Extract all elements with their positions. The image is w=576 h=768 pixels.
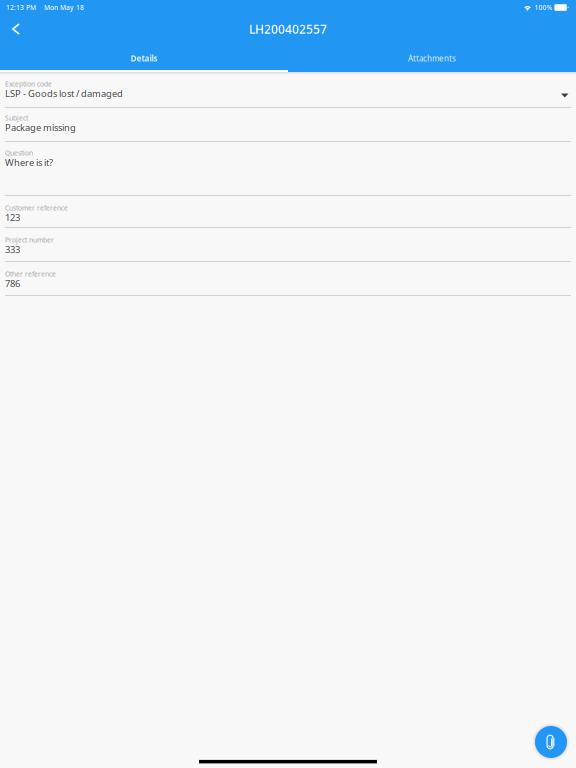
staticText: 12:13 PM [6, 3, 36, 12]
button[interactable]: Project number [0, 228, 576, 262]
button[interactable]: Other reference [0, 262, 576, 296]
staticText: Customer reference [5, 204, 68, 212]
staticText: Question [5, 149, 33, 157]
button[interactable]: Attachments [288, 43, 576, 72]
staticText: LSP - Goods lost / damaged [5, 87, 123, 100]
staticText: LH200402557 [249, 21, 327, 37]
staticText: Exception code [5, 80, 52, 88]
staticText: Project number [5, 236, 54, 244]
staticText: Package missing [5, 121, 76, 134]
staticText: 123 [5, 211, 20, 224]
staticText: 786 [5, 277, 20, 290]
staticText: Other reference [5, 270, 56, 278]
staticText: Mon May 18 [44, 3, 84, 12]
staticText: Attachments [408, 53, 456, 64]
button[interactable]: Exception code [0, 75, 576, 108]
staticText: 333 [5, 243, 20, 256]
staticText: Subject [5, 114, 28, 122]
button[interactable]: Back [0, 16, 32, 42]
button[interactable]: Question [0, 142, 576, 196]
button[interactable]: Customer reference [0, 196, 576, 228]
button[interactable]: Details [0, 43, 288, 72]
staticText: Where is it? [5, 156, 53, 169]
staticText: Details [130, 53, 157, 64]
staticText: 100% [534, 3, 552, 12]
button[interactable]: Add attachment [532, 723, 569, 760]
button[interactable]: Subject [0, 108, 576, 142]
